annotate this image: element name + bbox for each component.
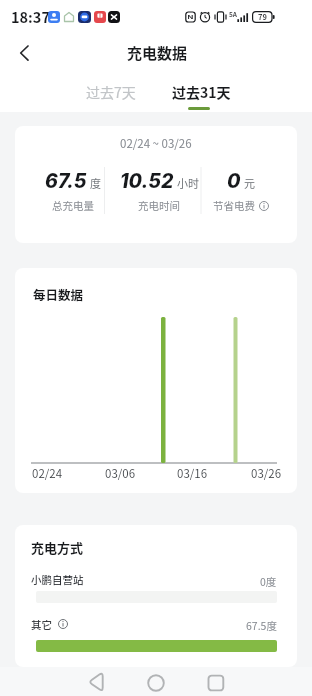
staticText: 67.5度 — [246, 618, 277, 632]
staticText: 02/24 ~ 03/26 — [120, 135, 192, 152]
button[interactable]: 充电时间 — [89, 198, 229, 213]
button[interactable] — [142, 669, 170, 696]
staticText: 充电数据 — [127, 42, 188, 64]
staticText: 节省电费 — [213, 198, 255, 213]
staticText: 03/06 — [105, 465, 136, 482]
button[interactable]: 节省电费 — [171, 198, 311, 213]
staticText: 每日数据 — [33, 285, 84, 303]
staticText: 度 — [90, 175, 101, 191]
staticText: 其它 — [31, 617, 52, 631]
staticText: 过去31天 — [172, 82, 231, 102]
staticText: 79 — [258, 11, 267, 22]
staticText: 小鹏自营站 — [31, 572, 84, 587]
staticText: 18:37 — [11, 6, 50, 27]
staticText: 元 — [244, 175, 255, 191]
button[interactable] — [202, 669, 230, 696]
button[interactable]: 总充电量 — [3, 198, 143, 213]
button[interactable]: 过去7天 — [31, 78, 191, 106]
staticText: 过去7天 — [86, 82, 136, 102]
staticText: 小时 — [177, 175, 199, 191]
button[interactable] — [82, 668, 110, 696]
staticText: 03/26 — [251, 465, 282, 482]
staticText: 10.52 — [120, 169, 174, 193]
staticText: 5A — [229, 9, 238, 18]
staticText: 67.5 — [45, 169, 87, 193]
button[interactable] — [36, 640, 277, 652]
staticText: 0度 — [260, 574, 277, 588]
staticText: 0 — [227, 169, 241, 193]
staticText: 总充电量 — [52, 198, 94, 213]
staticText: 02/24 — [32, 465, 63, 482]
staticText: 充电时间 — [138, 198, 180, 213]
button[interactable] — [10, 42, 40, 64]
button[interactable]: 过去31天 — [121, 78, 281, 106]
staticText: 充电方式 — [31, 538, 84, 557]
staticText: 03/16 — [177, 465, 208, 482]
